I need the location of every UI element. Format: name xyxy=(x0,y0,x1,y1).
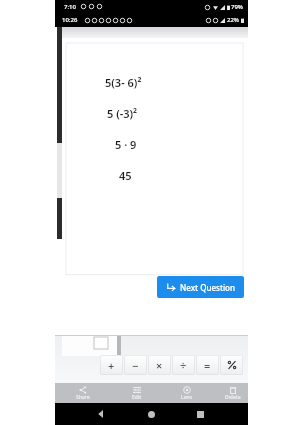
staticText: 5(3- 6)² xyxy=(105,75,142,90)
staticText: 7:10 xyxy=(64,3,76,11)
button[interactable]: Share xyxy=(67,383,99,403)
button[interactable]: = xyxy=(196,355,219,375)
staticText: 10:26 xyxy=(62,16,78,24)
staticText: Next Question xyxy=(180,282,236,293)
button[interactable]: Edit xyxy=(121,383,153,403)
staticText: Lens xyxy=(181,394,193,401)
button[interactable]: Lens xyxy=(171,383,203,403)
staticText: × xyxy=(156,358,163,373)
staticText: Delete xyxy=(225,394,241,401)
button[interactable]: × xyxy=(148,355,171,375)
staticText: 22% xyxy=(227,16,239,24)
button[interactable]: Back xyxy=(97,410,105,418)
button[interactable]: ÷ xyxy=(172,355,195,375)
staticText: 5 (-3)² xyxy=(107,106,138,121)
staticText: 45 xyxy=(119,168,132,183)
staticText: 79% xyxy=(231,3,243,11)
button[interactable]: Next Question xyxy=(157,276,244,298)
button[interactable]: Delete xyxy=(217,383,249,403)
staticText: 5 · 9 xyxy=(115,137,137,152)
button[interactable]: − xyxy=(124,355,147,375)
staticText: ÷ xyxy=(180,358,187,373)
button[interactable]: + xyxy=(100,355,123,375)
staticText: − xyxy=(132,358,139,373)
staticText: Share xyxy=(76,394,90,401)
button[interactable] xyxy=(220,355,243,375)
staticText: = xyxy=(204,358,211,373)
staticText: + xyxy=(108,358,115,373)
button[interactable]: Home xyxy=(148,411,155,418)
staticText: Edit xyxy=(132,394,142,401)
